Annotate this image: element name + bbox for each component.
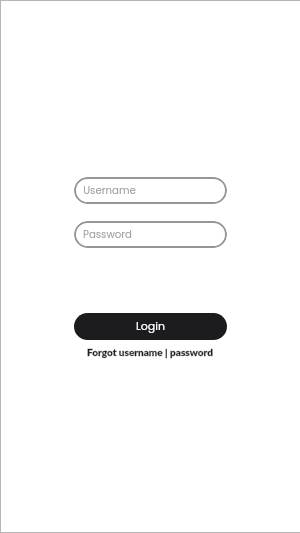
button[interactable]: Login xyxy=(74,313,227,340)
staticText: Forgot username | password xyxy=(87,346,213,358)
button[interactable]: Username xyxy=(74,177,227,204)
staticText: Login xyxy=(136,318,165,333)
staticText: Username xyxy=(83,183,136,197)
staticText: Forgot username | password xyxy=(87,346,213,358)
staticText: Password xyxy=(83,227,132,241)
button[interactable]: Password xyxy=(74,221,227,248)
button[interactable]: Forgot username | password xyxy=(81,344,219,360)
